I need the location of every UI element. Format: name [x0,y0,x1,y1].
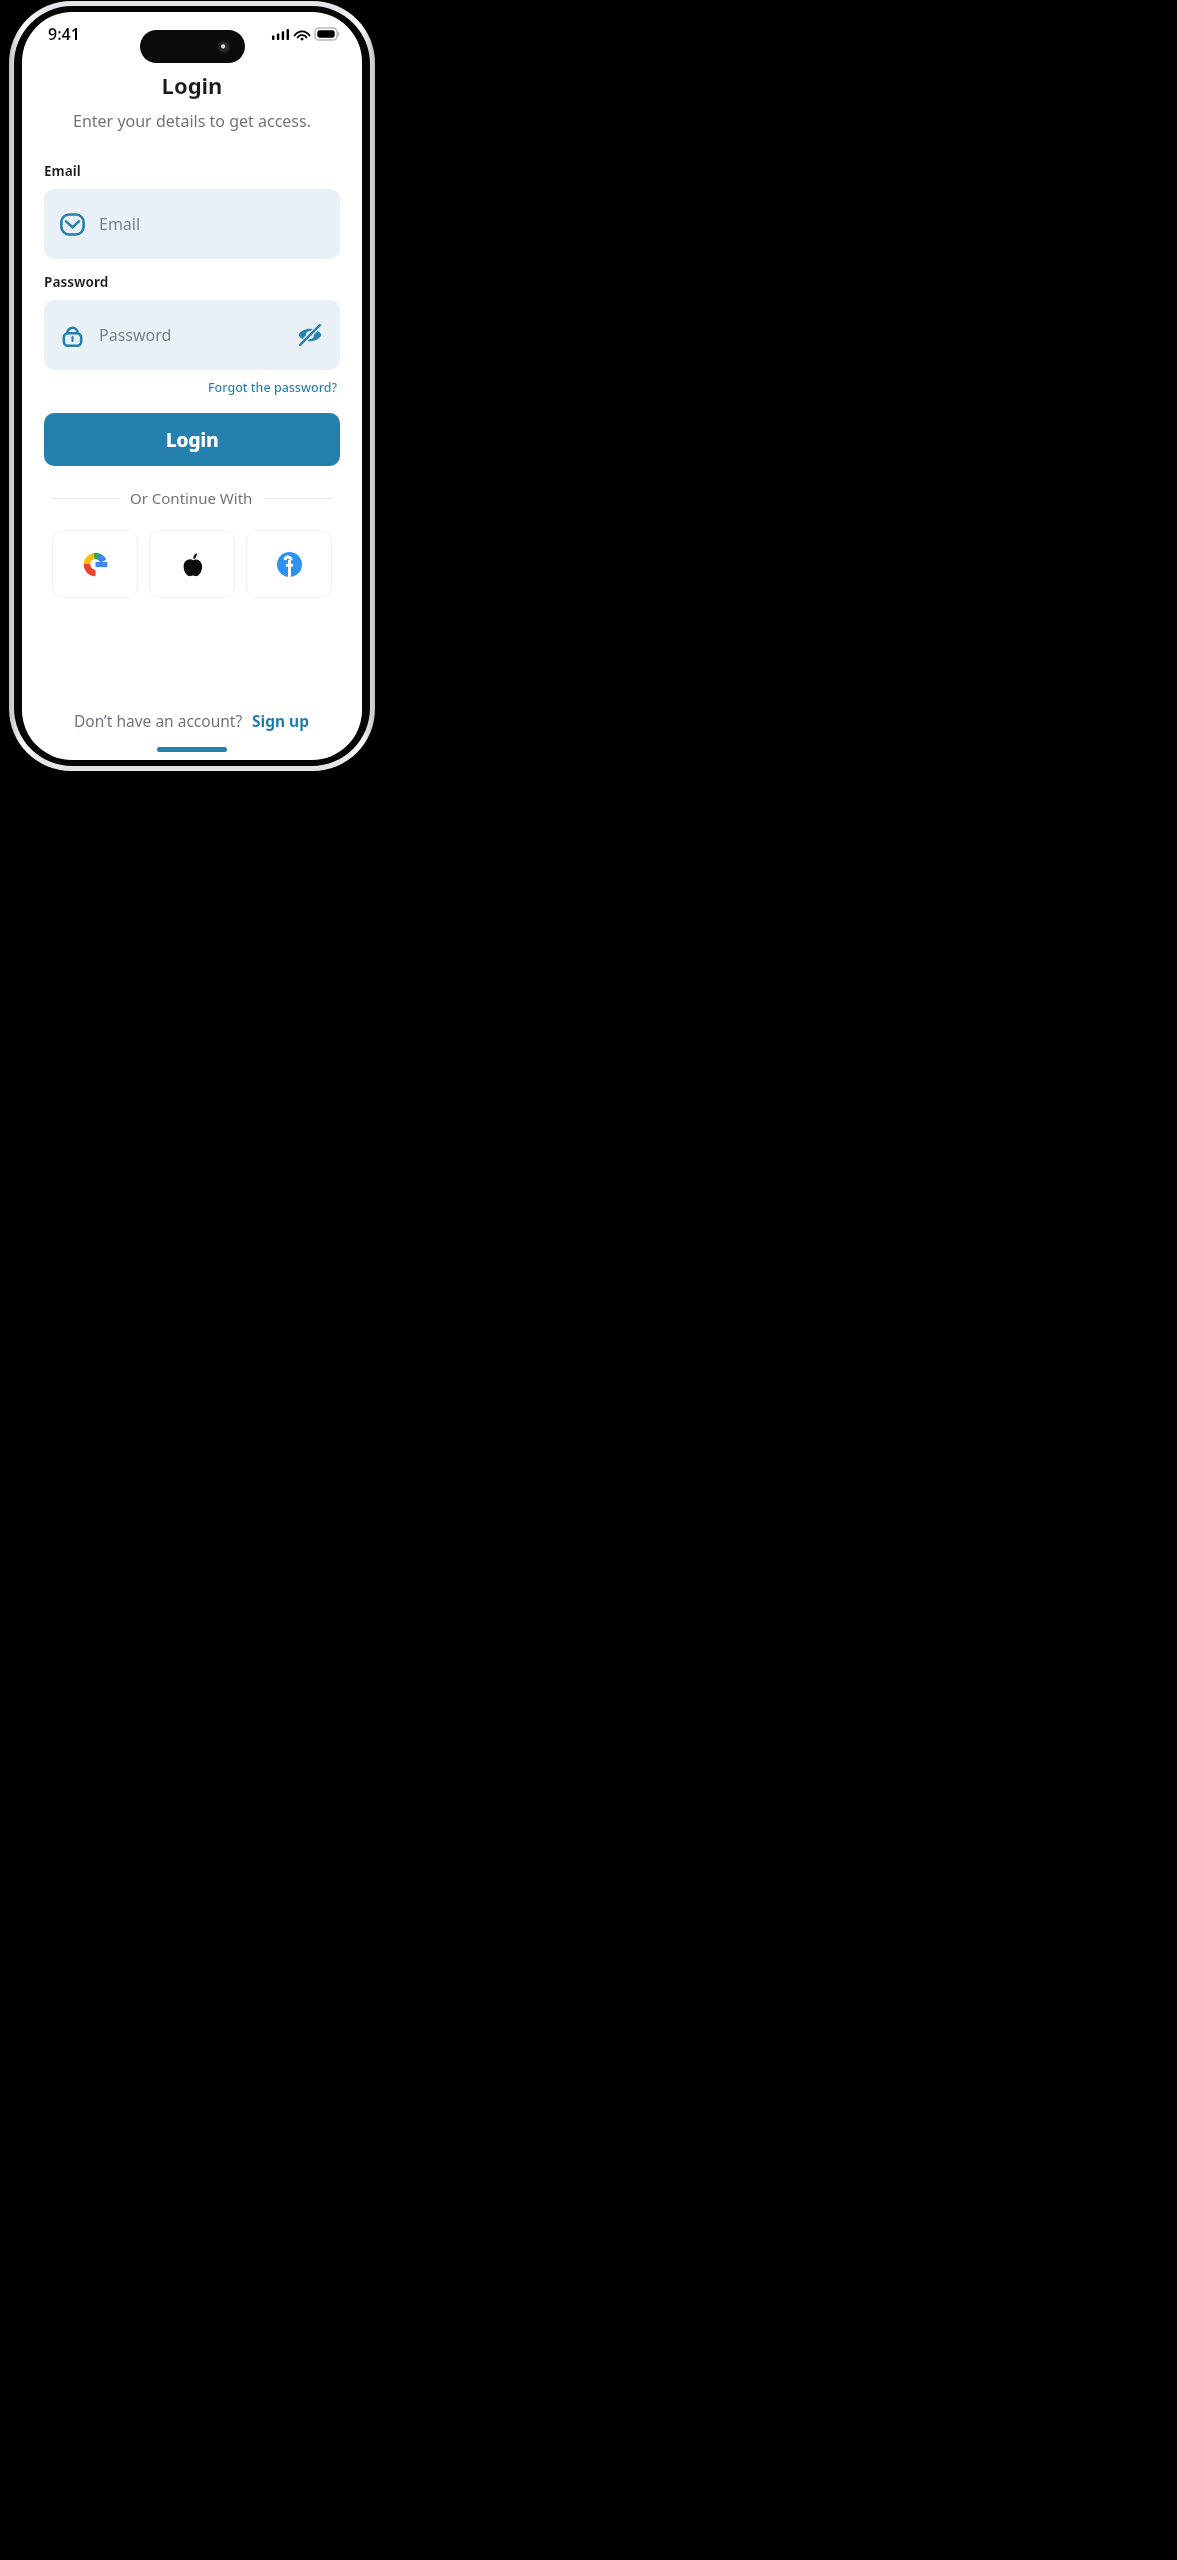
staticText: 9:41 [48,23,80,45]
button[interactable]: Sign in with Apple [149,530,235,598]
staticText: Password [99,324,172,346]
staticText: Or Continue With [130,488,253,508]
staticText: Forgot the password? [208,379,338,396]
staticText: Login [44,70,340,100]
staticText: Don’t have an account? [74,710,243,731]
button[interactable]: Email [44,189,340,259]
button[interactable]: Login [44,413,340,466]
staticText: Enter your details to get access. [44,110,340,132]
staticText: Sign up [252,710,309,731]
staticText: Login [166,427,219,453]
button[interactable]: Sign up [250,708,311,733]
button[interactable]: Forgot the password? [206,377,340,398]
staticText: Email [44,162,81,180]
button[interactable]: Sign in with Google [52,530,138,598]
button[interactable]: Sign in with Facebook [246,530,332,598]
button[interactable]: Show password [293,318,327,352]
button[interactable]: Password [44,300,340,370]
staticText: Email [99,213,141,235]
staticText: Password [44,273,109,291]
